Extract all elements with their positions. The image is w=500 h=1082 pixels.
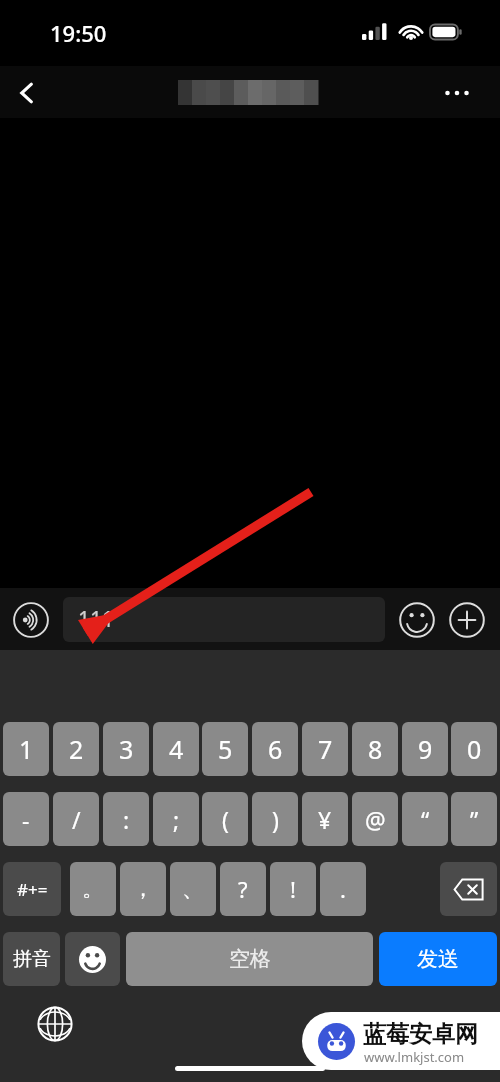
button[interactable]: 3 — [103, 722, 149, 776]
staticText: ! — [290, 874, 296, 904]
button[interactable]: ; — [153, 792, 199, 846]
button[interactable]: 。 — [70, 862, 116, 916]
staticText: ; — [173, 804, 180, 835]
staticText: 拼音 — [13, 947, 51, 971]
staticText: - — [22, 804, 30, 835]
staticText: 3 — [119, 732, 134, 766]
button[interactable]: Add attachment — [446, 599, 488, 641]
staticText: @ — [365, 804, 386, 835]
staticText: ” — [470, 804, 479, 835]
staticText: 19:50 — [50, 18, 107, 48]
staticText: 空格 — [229, 946, 271, 972]
button[interactable]: 1 — [3, 722, 49, 776]
staticText: ¥ — [318, 804, 332, 835]
staticText: 发送 — [417, 946, 459, 972]
staticText: #+= — [17, 878, 48, 901]
button[interactable]: Emoji — [396, 599, 438, 641]
button[interactable]: 拼音 — [3, 932, 60, 986]
button[interactable]: - — [3, 792, 49, 846]
staticText: 4 — [169, 732, 184, 766]
staticText: 。 — [82, 875, 104, 903]
button[interactable]: 7 — [302, 722, 348, 776]
button[interactable]: / — [53, 792, 99, 846]
staticText: 、 — [182, 875, 204, 903]
button[interactable]: : — [103, 792, 149, 846]
staticText: . — [340, 874, 346, 904]
button[interactable]: . — [320, 862, 366, 916]
button[interactable]: “ — [402, 792, 448, 846]
staticText: 7 — [318, 732, 333, 766]
button[interactable]: Back — [6, 72, 48, 114]
button[interactable]: 9 — [402, 722, 448, 776]
staticText: 0 — [467, 732, 482, 766]
staticText: 111 — [78, 605, 115, 634]
staticText: 5 — [218, 732, 233, 766]
button[interactable]: More options — [436, 72, 478, 114]
button[interactable]: Switch keyboard language — [33, 1002, 77, 1046]
button[interactable]: 8 — [352, 722, 398, 776]
button[interactable]: 4 — [153, 722, 199, 776]
button[interactable]: Emoji keyboard — [65, 932, 120, 986]
staticText: 8 — [368, 732, 383, 766]
button[interactable]: 111 — [63, 597, 385, 642]
staticText: ? — [238, 874, 248, 904]
button[interactable]: 发送 — [379, 932, 497, 986]
staticText: ， — [132, 875, 154, 903]
staticText: ) — [272, 804, 279, 835]
button[interactable]: @ — [352, 792, 398, 846]
staticText: 9 — [418, 732, 433, 766]
button[interactable]: 2 — [53, 722, 99, 776]
staticText: www.lmkjst.com — [364, 1048, 465, 1066]
staticText: : — [123, 804, 130, 835]
button[interactable]: ) — [252, 792, 298, 846]
staticText: / — [72, 804, 81, 835]
button[interactable]: ? — [220, 862, 266, 916]
button[interactable]: #+= — [3, 862, 61, 916]
button[interactable]: ( — [202, 792, 248, 846]
button[interactable]: Backspace — [440, 862, 497, 916]
button[interactable]: 空格 — [126, 932, 373, 986]
button[interactable]: ， — [120, 862, 166, 916]
button[interactable]: 、 — [170, 862, 216, 916]
button[interactable]: 5 — [202, 722, 248, 776]
button[interactable]: Voice message — [10, 599, 52, 641]
button[interactable]: 0 — [451, 722, 497, 776]
staticText: 6 — [268, 732, 283, 766]
staticText: 2 — [69, 732, 84, 766]
button[interactable]: ” — [451, 792, 497, 846]
button[interactable]: 6 — [252, 722, 298, 776]
button[interactable]: ¥ — [302, 792, 348, 846]
staticText: “ — [421, 804, 430, 835]
staticText: 1 — [19, 732, 34, 766]
staticText: 蓝莓安卓网 — [363, 1020, 478, 1049]
staticText: ( — [222, 804, 229, 835]
button[interactable]: ! — [270, 862, 316, 916]
